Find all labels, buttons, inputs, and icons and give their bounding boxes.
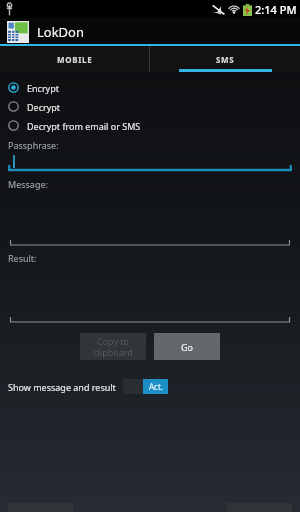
button[interactable]: Decrypt from email or SMS	[8, 116, 292, 135]
button[interactable]: SMS	[150, 46, 300, 72]
staticText: Message:	[8, 178, 48, 190]
button[interactable]: Decrypt	[8, 97, 292, 116]
staticText: Decrypt	[27, 101, 61, 113]
staticText: Decrypt from email or SMS	[27, 120, 141, 132]
other: App icon	[7, 21, 29, 43]
button[interactable]	[8, 264, 292, 324]
staticText: Show message and result	[8, 381, 116, 393]
staticText: Act.	[149, 381, 163, 392]
button[interactable]	[8, 190, 292, 247]
button[interactable]	[8, 151, 292, 172]
button[interactable]: Go	[154, 333, 220, 360]
staticText: Passphrase:	[8, 139, 59, 151]
button[interactable]: App icon	[7, 21, 85, 43]
staticText: LokDon	[37, 23, 85, 41]
staticText: MOBILE	[57, 54, 93, 65]
staticText: Encrypt	[27, 82, 59, 94]
staticText: SMS	[216, 54, 235, 65]
button[interactable]: Show message and result	[8, 379, 168, 394]
staticText: Go	[181, 341, 193, 353]
staticText: Result:	[8, 252, 37, 264]
button[interactable]: MOBILE	[0, 46, 149, 72]
button[interactable]: Copy to clipboard	[80, 333, 146, 360]
staticText: 2:14 PM	[255, 2, 297, 17]
button[interactable]: Encrypt	[8, 78, 292, 97]
staticText: Copy to clipboard	[93, 335, 133, 358]
